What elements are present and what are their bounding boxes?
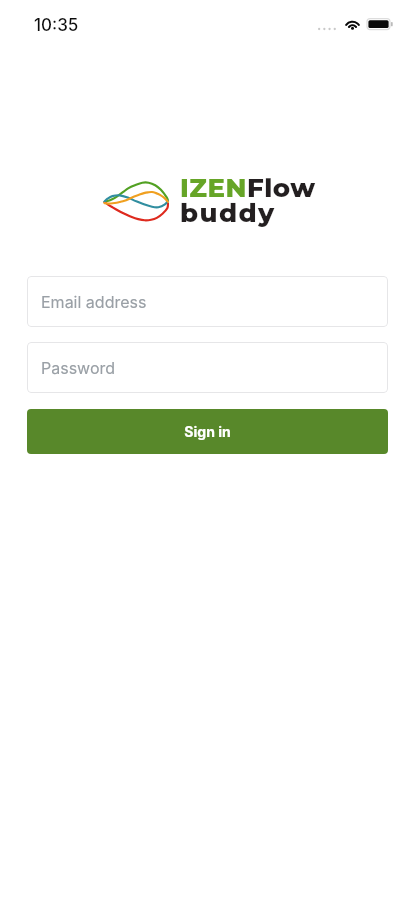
staticText: Flow <box>247 172 316 204</box>
staticText: buddy <box>180 197 276 229</box>
staticText: IZEN <box>180 172 247 204</box>
staticText: Email address <box>41 292 147 311</box>
other: IZEN Flow buddy logo <box>104 182 168 222</box>
staticText: Password <box>41 358 116 377</box>
button[interactable]: Email address <box>27 276 388 327</box>
staticText: 10:35 <box>34 15 79 36</box>
button[interactable]: Sign in <box>27 409 388 454</box>
button[interactable]: Password <box>27 342 388 393</box>
staticText: Sign in <box>184 423 231 440</box>
